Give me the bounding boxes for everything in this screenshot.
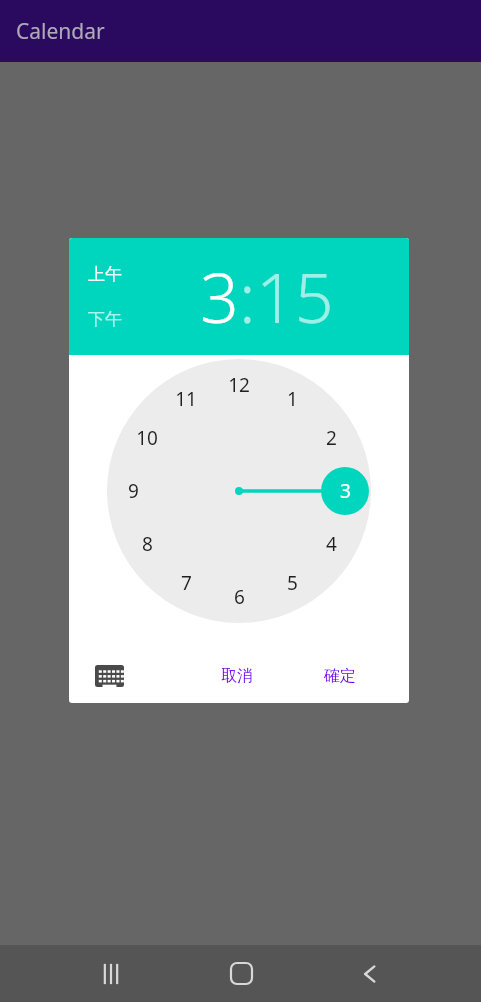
button[interactable]: 5 — [274, 568, 310, 598]
button[interactable]: 7 — [168, 568, 204, 598]
button[interactable]: 15 — [256, 250, 334, 343]
staticText: 8 — [142, 531, 153, 557]
staticText: 15 — [256, 250, 334, 343]
button[interactable]: 上午 — [88, 261, 122, 288]
staticText: 2 — [326, 425, 337, 451]
staticText: 1 — [287, 386, 298, 412]
staticText: 11 — [175, 386, 197, 412]
button[interactable]: 9 — [115, 476, 151, 506]
staticText: 12 — [228, 372, 250, 398]
button[interactable]: 3 — [200, 250, 239, 343]
staticText: 3 — [340, 478, 351, 504]
staticText: 下午 — [88, 309, 122, 330]
button[interactable]: Switch to keyboard input — [87, 654, 131, 698]
button[interactable]: 11 — [168, 384, 204, 414]
button[interactable]: 8 — [129, 529, 165, 559]
staticText: 5 — [287, 570, 298, 596]
staticText: 6 — [234, 584, 245, 610]
staticText: 3 — [200, 250, 239, 343]
staticText: 取消 — [221, 666, 253, 686]
staticText: : — [239, 250, 256, 343]
button[interactable]: 2 — [313, 423, 349, 453]
button[interactable]: 下午 — [88, 306, 122, 333]
button[interactable]: Home — [212, 945, 270, 1002]
button[interactable]: 10 — [129, 423, 165, 453]
button[interactable]: 3 — [327, 476, 363, 506]
button[interactable]: 確定 — [312, 658, 368, 694]
staticText: 9 — [128, 478, 139, 504]
button[interactable]: 取消 — [209, 658, 265, 694]
staticText: 上午 — [88, 264, 122, 285]
button[interactable]: 1 — [274, 384, 310, 414]
button[interactable]: 12 — [221, 370, 257, 400]
staticText: 7 — [181, 570, 192, 596]
button[interactable]: 4 — [313, 529, 349, 559]
button[interactable]: 6 — [221, 582, 257, 612]
button[interactable]: Recent apps — [82, 945, 140, 1002]
staticText: Calendar — [16, 17, 105, 46]
staticText: 4 — [326, 531, 337, 557]
staticText: 確定 — [324, 666, 356, 686]
button[interactable]: Back — [341, 945, 399, 1002]
staticText: 10 — [136, 425, 158, 451]
